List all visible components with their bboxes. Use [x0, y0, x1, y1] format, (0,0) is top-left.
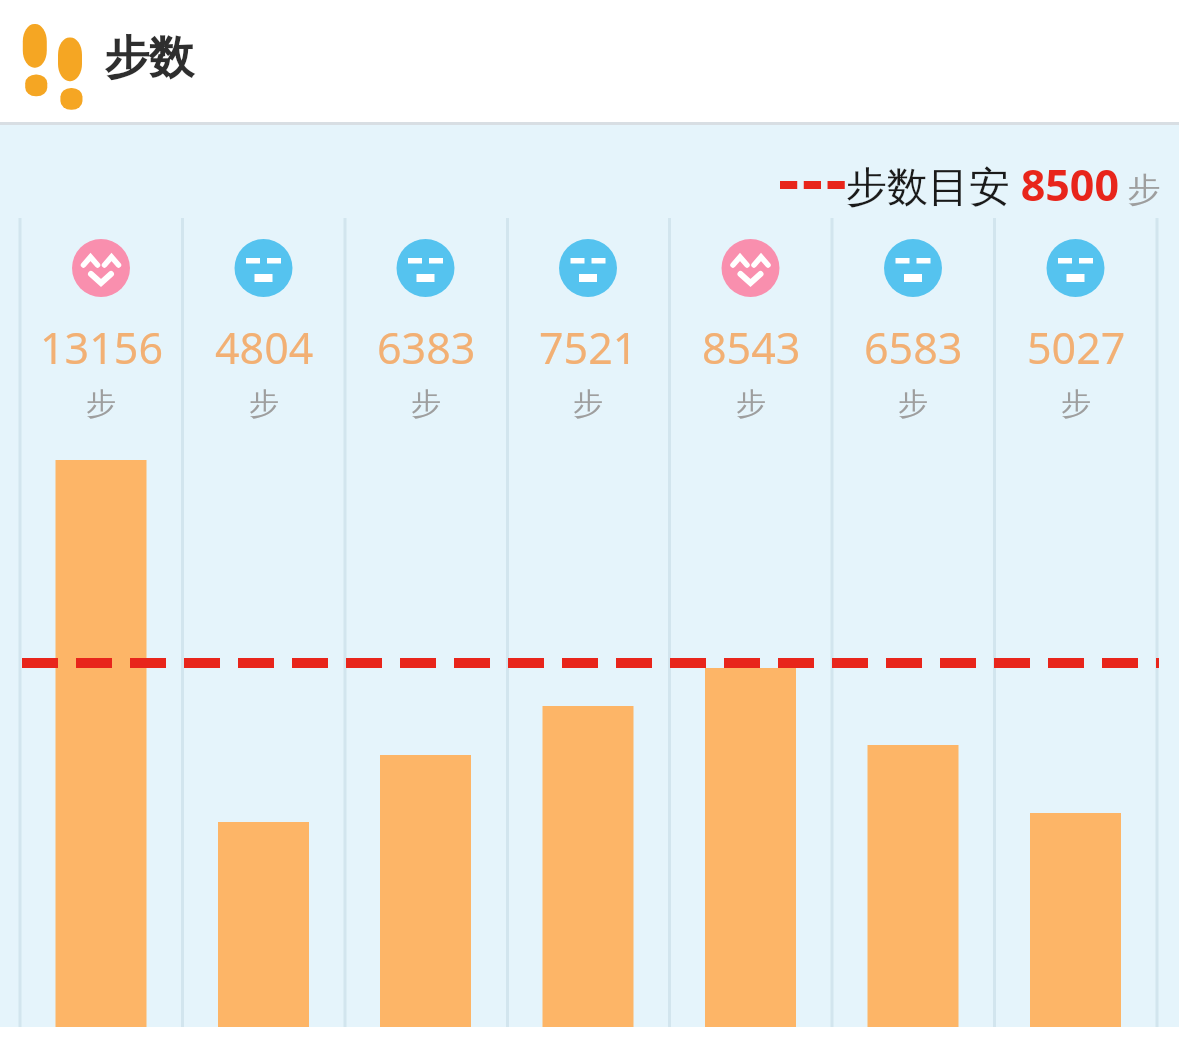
staticText: 步 — [249, 385, 279, 423]
staticText: 6583 — [864, 318, 963, 377]
button[interactable]: Steps icon — [0, 0, 1179, 122]
other: Goal line legend — [780, 175, 842, 195]
staticText: 8543 — [702, 318, 801, 377]
other: Steps icon — [18, 19, 98, 103]
staticText: 7521 — [539, 318, 638, 377]
button[interactable]: Goal line legend — [0, 125, 1179, 1027]
staticText: 步数目安 8500 步 — [846, 155, 1161, 214]
staticText: 步 — [411, 385, 441, 423]
button[interactable]: 8543 — [670, 318, 832, 423]
staticText: 4804 — [215, 318, 314, 377]
staticText: 13156 — [40, 318, 163, 377]
staticText: 步 — [898, 385, 928, 423]
button[interactable]: 7521 — [507, 318, 669, 423]
staticText: 步数 — [104, 30, 194, 87]
staticText: 步 — [86, 385, 116, 423]
button[interactable]: 5027 — [995, 318, 1157, 423]
staticText: 步 — [1061, 385, 1091, 423]
button[interactable]: 13156 — [20, 318, 182, 423]
staticText: 步 — [573, 385, 603, 423]
button[interactable]: Goal line legend — [780, 155, 1161, 214]
staticText: 步 — [736, 385, 766, 423]
button[interactable]: 6383 — [345, 318, 507, 423]
button[interactable]: 4804 — [183, 318, 345, 423]
staticText: 6383 — [377, 318, 476, 377]
staticText: 5027 — [1027, 318, 1126, 377]
button[interactable]: 6583 — [832, 318, 994, 423]
